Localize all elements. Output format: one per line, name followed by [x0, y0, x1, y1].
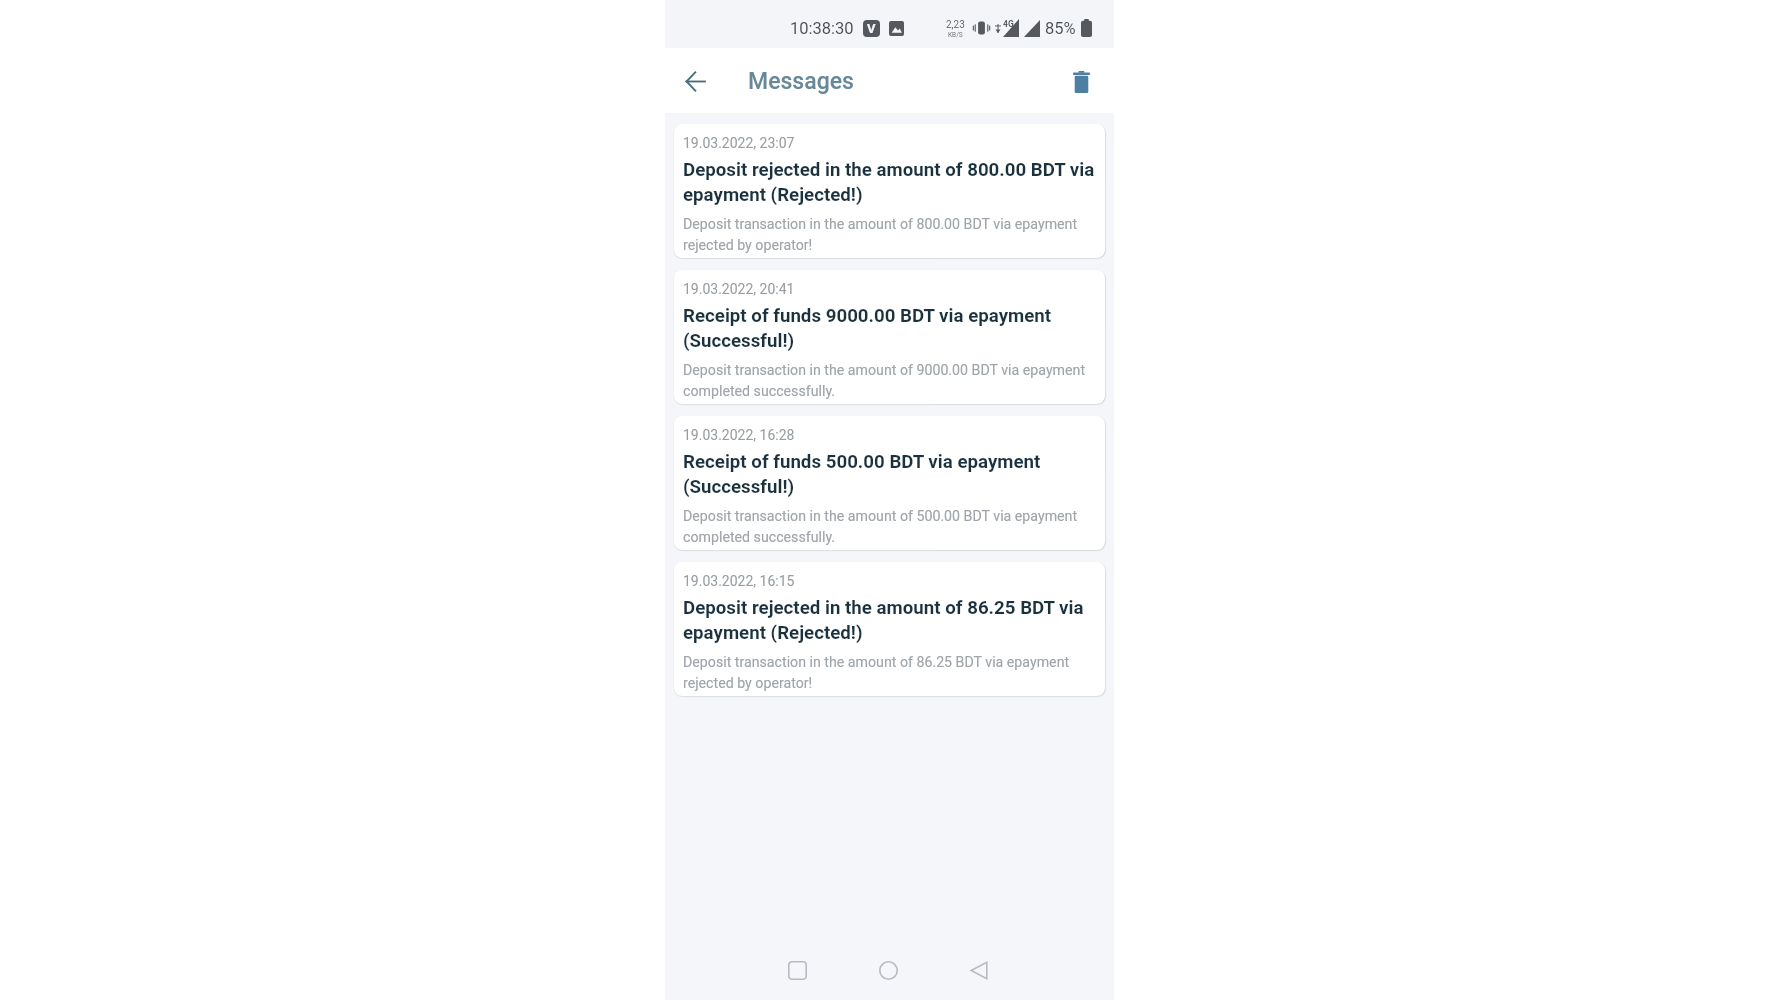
staticText: KB/S [948, 31, 963, 38]
staticText: Receipt of funds 500.00 BDT via epayment… [683, 449, 1095, 499]
button[interactable]: Home [865, 945, 911, 995]
staticText: Deposit transaction in the amount of 900… [683, 358, 1095, 400]
staticText: 19.03.2022, 16:28 [683, 427, 795, 444]
staticText: Deposit rejected in the amount of 86.25 … [683, 595, 1095, 645]
button[interactable]: 19.03.2022, 20:41 [674, 270, 1105, 404]
button[interactable]: Back [956, 945, 1002, 995]
staticText: 19.03.2022, 23:07 [683, 135, 795, 152]
staticText: 2,23 [946, 19, 965, 31]
staticText: 85% [1045, 19, 1076, 38]
button[interactable]: Back [665, 48, 726, 113]
staticText: Receipt of funds 9000.00 BDT via epaymen… [683, 303, 1095, 353]
staticText: Deposit transaction in the amount of 800… [683, 212, 1095, 254]
staticText: Deposit transaction in the amount of 86.… [683, 650, 1095, 692]
staticText: 4G [1003, 19, 1014, 29]
button[interactable]: Delete [1049, 48, 1114, 113]
staticText: 10:38:30 [790, 19, 854, 38]
button[interactable]: 19.03.2022, 16:28 [674, 416, 1105, 550]
staticText: 19.03.2022, 16:15 [683, 573, 795, 590]
button[interactable]: 19.03.2022, 23:07 [674, 124, 1105, 258]
staticText: Deposit rejected in the amount of 800.00… [683, 157, 1095, 207]
staticText: Deposit transaction in the amount of 500… [683, 504, 1095, 546]
staticText: Messages [748, 68, 854, 95]
staticText: V [867, 21, 876, 36]
button[interactable]: Recent apps [774, 945, 820, 995]
staticText: 19.03.2022, 20:41 [683, 281, 795, 298]
button[interactable]: 19.03.2022, 16:15 [674, 562, 1105, 696]
